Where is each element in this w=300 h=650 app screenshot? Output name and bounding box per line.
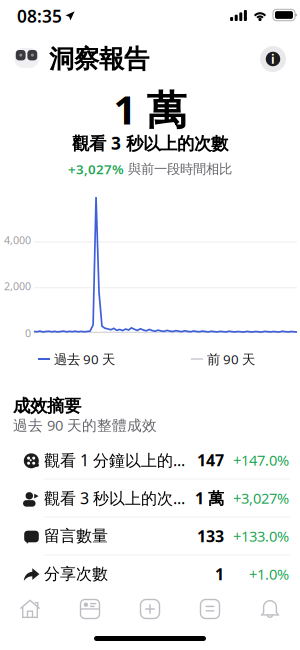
button[interactable]: Notifications	[240, 596, 300, 622]
staticText: 2,000	[4, 279, 31, 293]
staticText: +3,027%	[233, 488, 289, 508]
staticText: 觀看 3 秒以上的次...	[44, 487, 185, 509]
staticText: 前 90 天	[207, 350, 255, 368]
button[interactable]: Home	[0, 596, 60, 622]
staticText: +133.0%	[233, 526, 289, 546]
staticText: 4,000	[4, 233, 31, 247]
staticText: +1.0%	[249, 564, 289, 584]
staticText: 0	[25, 326, 31, 340]
staticText: 133	[197, 525, 224, 547]
staticText: i	[271, 51, 275, 67]
staticText: 觀看 1 分鐘以上的...	[44, 449, 185, 471]
button[interactable]: Information	[258, 44, 288, 74]
button[interactable]: 留言數量	[0, 518, 300, 555]
staticText: 147	[197, 449, 224, 471]
staticText: 留言數量	[44, 526, 108, 546]
staticText: 1 萬	[195, 487, 224, 509]
button[interactable]: 分享次數	[0, 556, 300, 593]
staticText: 觀看 3 秒以上的次數	[72, 131, 228, 154]
staticText: +147.0%	[233, 450, 289, 470]
staticText: 1 萬	[113, 82, 186, 135]
button[interactable]: 觀看 3 秒以上的次...	[0, 480, 300, 517]
staticText: 1	[215, 563, 224, 585]
staticText: 過去 90 天的整體成效	[13, 415, 157, 435]
staticText: +3,027%	[68, 160, 124, 178]
button[interactable]: 觀看 1 分鐘以上的...	[0, 442, 300, 479]
staticText: 成效摘要	[13, 395, 81, 417]
staticText: 洞察報告	[49, 43, 149, 74]
button[interactable]: Messages	[180, 596, 240, 622]
staticText: 與前一段時間相比	[128, 161, 232, 177]
button[interactable]: Feed	[60, 596, 120, 622]
staticText: 08:35	[17, 4, 62, 27]
staticText: 分享次數	[44, 564, 108, 584]
staticText: 過去 90 天	[54, 350, 115, 368]
button[interactable]: Create	[120, 596, 180, 622]
